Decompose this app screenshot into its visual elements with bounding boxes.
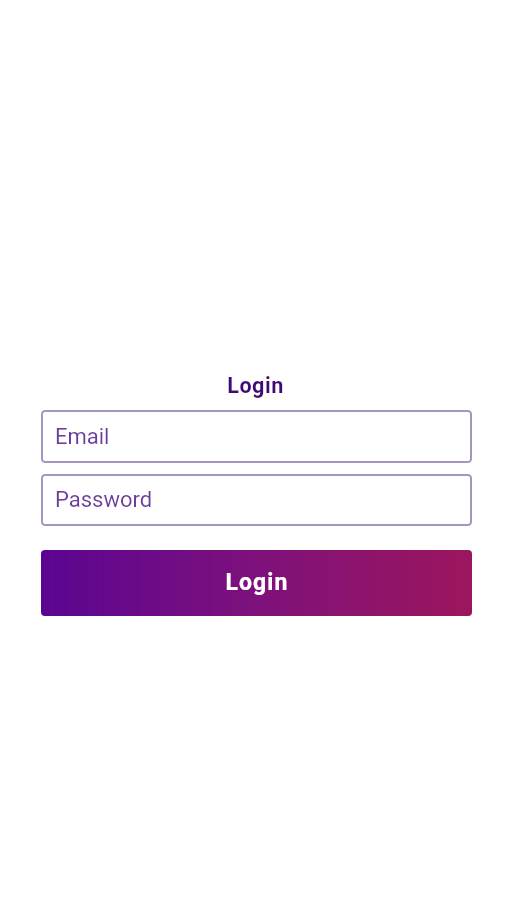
staticText: Login — [227, 373, 284, 398]
button[interactable]: Email — [41, 410, 472, 463]
button[interactable]: Password — [41, 474, 472, 526]
button[interactable]: Login — [41, 550, 472, 616]
staticText: Login — [225, 569, 289, 596]
staticText: Email — [55, 424, 110, 450]
staticText: Password — [55, 487, 153, 513]
